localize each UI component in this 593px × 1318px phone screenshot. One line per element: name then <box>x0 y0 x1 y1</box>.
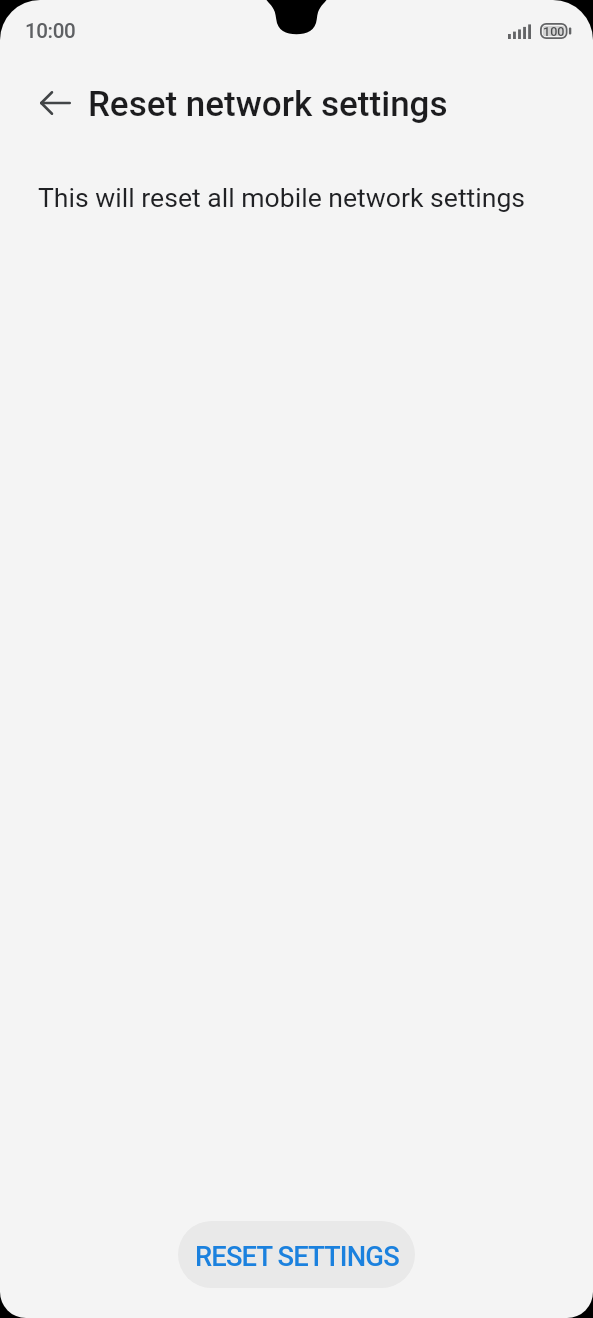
staticText: RESET SETTINGS <box>195 1241 399 1273</box>
button[interactable]: RESET SETTINGS <box>178 1221 415 1288</box>
staticText: 100 <box>543 24 565 39</box>
button[interactable]: Navigate up <box>32 80 78 126</box>
staticText: This will reset all mobile network setti… <box>38 182 526 213</box>
staticText: Reset network settings <box>88 84 448 125</box>
staticText: 10:00 <box>25 19 76 43</box>
